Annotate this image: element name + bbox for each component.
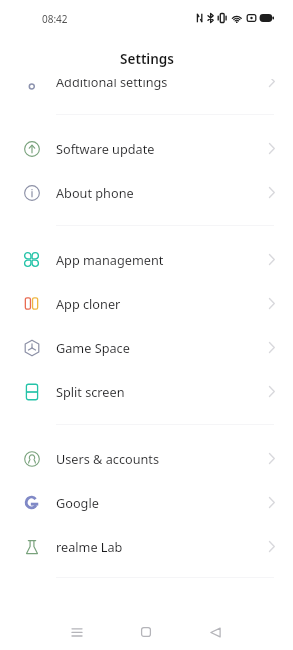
- staticText: Users & accounts: [56, 450, 160, 467]
- staticText: Google: [56, 494, 99, 511]
- staticText: Split screen: [56, 383, 125, 400]
- staticText: Game Space: [56, 339, 130, 356]
- staticText: 08:42: [42, 12, 68, 26]
- staticText: Additional settings: [56, 79, 168, 90]
- button[interactable]: Recent apps: [57, 612, 97, 650]
- button[interactable]: Users & accounts: [0, 436, 293, 480]
- button[interactable]: Software update: [0, 126, 293, 170]
- button[interactable]: Google: [0, 480, 293, 524]
- button[interactable]: Back: [195, 612, 235, 650]
- staticText: App management: [56, 251, 164, 268]
- staticText: Software update: [56, 140, 155, 157]
- button[interactable]: Game Space: [0, 325, 293, 369]
- button[interactable]: App management: [0, 237, 293, 281]
- button[interactable]: Home: [126, 612, 166, 650]
- button[interactable]: App cloner: [0, 281, 293, 325]
- button[interactable]: realme Lab: [0, 524, 293, 568]
- staticText: About phone: [56, 184, 134, 201]
- button[interactable]: About phone: [0, 170, 293, 214]
- button[interactable]: Additional settings: [0, 79, 293, 103]
- staticText: App cloner: [56, 295, 121, 312]
- staticText: realme Lab: [56, 538, 123, 555]
- staticText: Settings: [120, 50, 174, 68]
- button[interactable]: Split screen: [0, 369, 293, 413]
- button[interactable]: Settings: [0, 36, 293, 79]
